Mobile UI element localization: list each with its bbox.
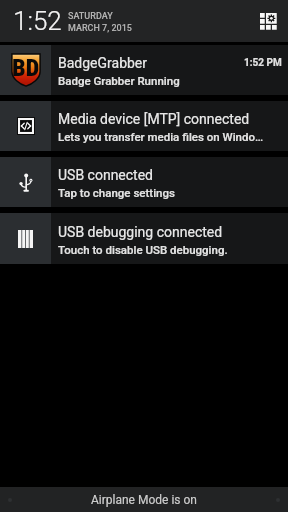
staticText: Lets you transfer media files on Windo… xyxy=(58,130,264,143)
button[interactable]: Airplane Mode is on xyxy=(0,487,288,512)
staticText: Airplane Mode is on xyxy=(91,493,197,507)
staticText: 1:52 PM xyxy=(244,57,282,69)
staticText: BadgeGrabber xyxy=(58,55,244,71)
staticText: Badge Grabber Running xyxy=(58,74,180,87)
staticText: USB connected xyxy=(58,167,282,183)
button[interactable]: USB debugging connected xyxy=(0,213,288,264)
staticText: USB debugging connected xyxy=(58,224,282,240)
staticText: Touch to disable USB debugging. xyxy=(58,243,228,256)
button[interactable]: USB connected xyxy=(0,157,288,207)
staticText: MARCH 7, 2015 xyxy=(68,23,132,34)
staticText: Media device [MTP] connected xyxy=(58,111,282,127)
staticText: 1:52 xyxy=(13,6,62,36)
staticText: SATURDAY xyxy=(68,11,113,22)
button[interactable]: BD xyxy=(0,45,288,95)
button[interactable]: Quick settings xyxy=(254,7,284,37)
staticText: BD xyxy=(12,54,40,82)
button[interactable]: Media device [MTP] connected xyxy=(0,101,288,151)
staticText: Tap to change settings xyxy=(58,186,175,199)
